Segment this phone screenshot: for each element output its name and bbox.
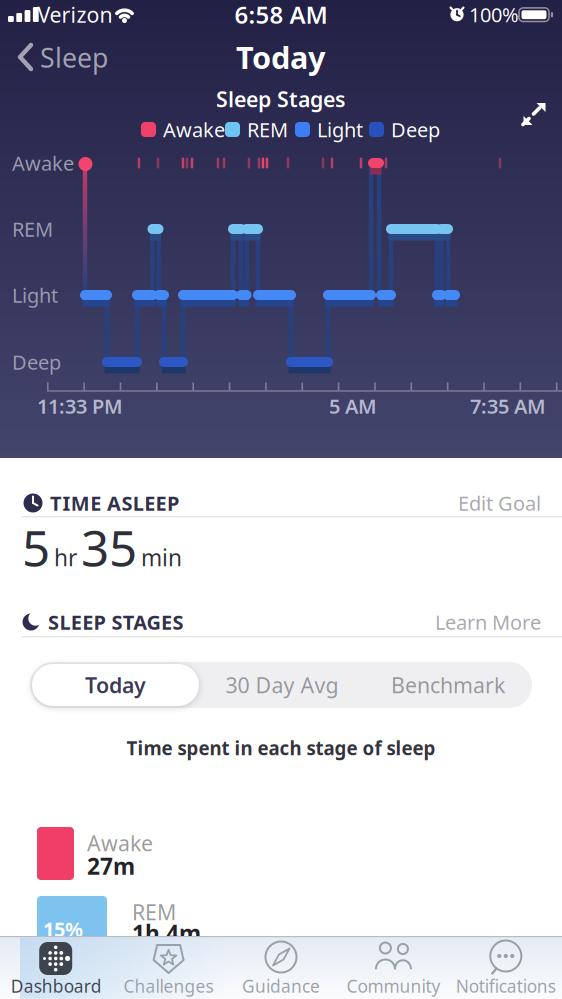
staticText: 1h 4m <box>132 918 201 948</box>
staticText: Sleep Stages <box>216 85 346 113</box>
staticText: REM <box>247 116 288 143</box>
staticText: 7:35 AM <box>470 393 546 419</box>
staticText: 11:33 PM <box>37 393 123 419</box>
button[interactable]: Guidance <box>225 936 337 999</box>
staticText: REM <box>132 898 176 926</box>
staticText: Light <box>12 282 58 308</box>
button[interactable]: Expand chart <box>519 99 549 129</box>
staticText: Notifications <box>456 974 556 997</box>
staticText: min <box>141 542 182 572</box>
staticText: Verizon <box>37 0 112 29</box>
button[interactable]: Today <box>32 664 199 706</box>
staticText: Today <box>85 671 146 699</box>
staticText: TIME ASLEEP <box>50 490 179 516</box>
staticText: Sleep <box>40 40 108 75</box>
button[interactable]: Notifications <box>450 936 562 999</box>
staticText: Light <box>317 116 363 143</box>
button[interactable]: 30 Day Avg <box>202 664 362 706</box>
staticText: Awake <box>87 829 153 857</box>
staticText: 15% <box>43 916 83 942</box>
staticText: Challenges <box>124 974 214 997</box>
staticText: Time spent in each stage of sleep <box>126 736 435 760</box>
staticText: REM <box>12 216 53 242</box>
staticText: Edit Goal <box>458 490 541 516</box>
staticText: Community <box>346 974 440 997</box>
button[interactable]: Learn More <box>411 605 541 639</box>
button[interactable]: Challenges <box>113 936 225 999</box>
staticText: Dashboard <box>11 974 102 997</box>
staticText: Awake <box>163 116 225 143</box>
button[interactable]: Benchmark <box>368 664 528 706</box>
button[interactable]: Dashboard <box>0 936 112 999</box>
staticText: Today <box>236 37 326 77</box>
button[interactable]: Back <box>6 35 126 79</box>
button[interactable]: Edit Goal <box>451 486 541 520</box>
button[interactable]: Community <box>337 936 449 999</box>
staticText: Benchmark <box>391 671 505 699</box>
staticText: 100% <box>469 1 519 28</box>
staticText: 6:58 AM <box>234 0 327 30</box>
staticText: 5 <box>22 514 50 580</box>
staticText: Awake <box>12 150 74 176</box>
staticText: Deep <box>391 116 440 143</box>
staticText: 35 <box>81 514 137 580</box>
staticText: Learn More <box>435 609 541 635</box>
staticText: 5 AM <box>329 393 377 419</box>
staticText: Deep <box>12 349 61 375</box>
staticText: hr <box>54 542 77 572</box>
staticText: Guidance <box>242 974 320 997</box>
staticText: 27m <box>87 851 135 881</box>
staticText: 30 Day Avg <box>225 671 338 699</box>
staticText: SLEEP STAGES <box>48 609 183 635</box>
